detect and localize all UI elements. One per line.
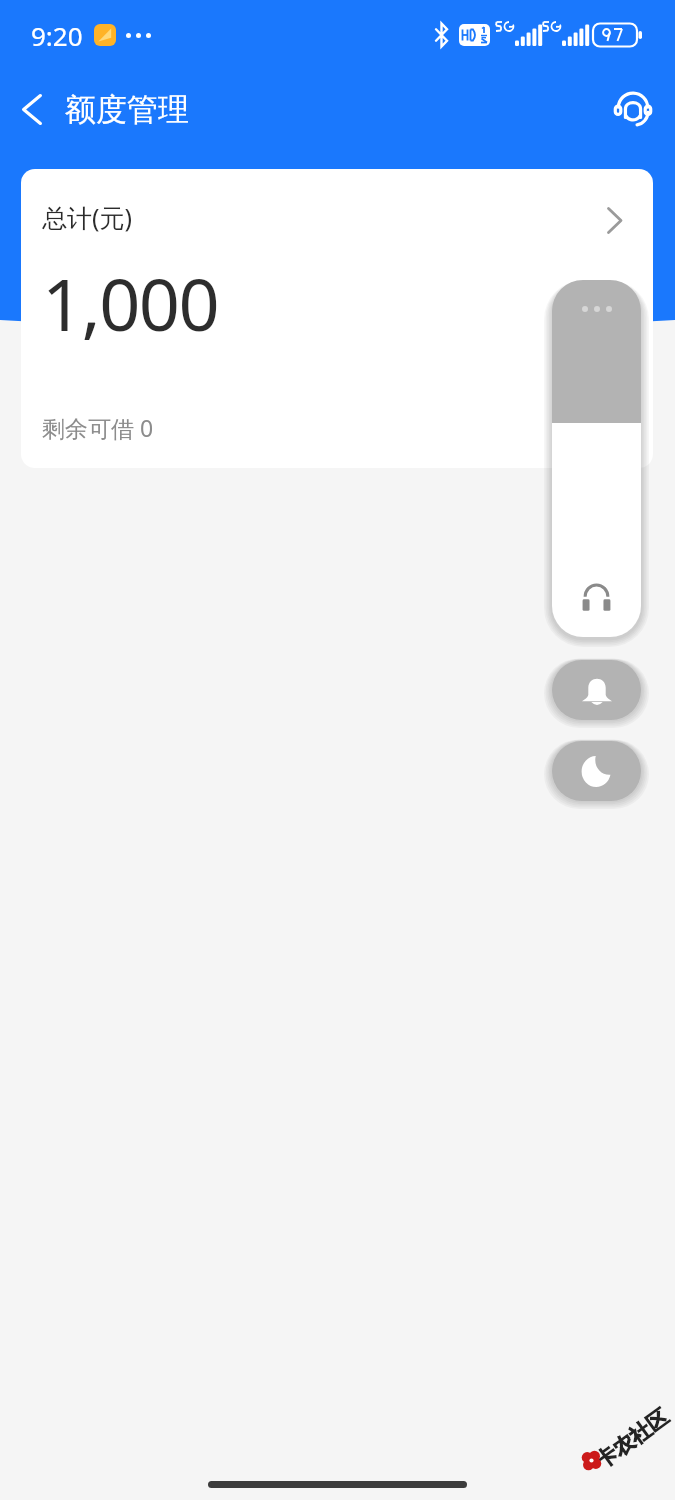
button[interactable]: Customer service — [608, 84, 658, 134]
staticText: 额度管理 — [65, 90, 189, 129]
staticText: 9:20 — [31, 18, 83, 53]
button[interactable]: Back — [12, 89, 52, 129]
staticText: 1,000 — [42, 254, 219, 352]
staticText: 剩余可借 0 — [42, 412, 154, 443]
button[interactable]: Notifications — [552, 660, 641, 720]
staticText: 卡农社区 — [590, 1404, 674, 1474]
button[interactable]: Do not disturb — [552, 741, 641, 801]
button[interactable]: Details — [597, 202, 633, 238]
staticText: 总计(元) — [42, 200, 133, 234]
button[interactable]: Support — [552, 423, 641, 637]
button[interactable]: 总计(元) — [21, 169, 653, 468]
button[interactable]: More options — [552, 280, 641, 423]
